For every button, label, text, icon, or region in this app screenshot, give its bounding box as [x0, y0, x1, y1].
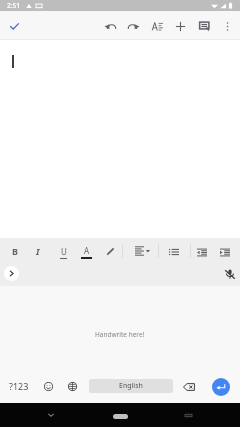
- button[interactable]: Expand toolbar: [4, 266, 19, 281]
- button[interactable]: List: [163, 241, 185, 263]
- button[interactable]: Done: [3, 15, 25, 37]
- button[interactable]: Align: [131, 240, 153, 262]
- button[interactable]: More options: [216, 15, 238, 37]
- button[interactable]: Change language: [63, 377, 81, 395]
- button[interactable]: Comment: [193, 15, 215, 37]
- button[interactable]: Hide keyboard: [42, 406, 60, 424]
- button[interactable]: Italic: [27, 240, 49, 262]
- button[interactable]: Increase indent: [214, 241, 236, 263]
- button[interactable]: Switch keyboard: [179, 406, 197, 424]
- button[interactable]: Enter: [212, 378, 230, 396]
- button[interactable]: Backspace: [180, 378, 198, 396]
- staticText: B: [12, 245, 18, 257]
- button[interactable]: English: [89, 379, 173, 393]
- button[interactable]: Redo: [122, 15, 144, 37]
- button[interactable]: Text formatting: [146, 15, 168, 37]
- button[interactable]: Emoji: [39, 377, 57, 395]
- staticText: 2:51: [7, 1, 20, 10]
- staticText: I: [36, 245, 40, 257]
- staticText: U: [61, 246, 67, 257]
- staticText: English: [119, 381, 143, 391]
- button[interactable]: Undo: [99, 15, 121, 37]
- staticText: A: [84, 245, 90, 256]
- button[interactable]: Decrease indent: [191, 241, 213, 263]
- button[interactable]: ?123: [7, 377, 31, 395]
- button[interactable]: Text color: [75, 241, 97, 263]
- button[interactable]: Home: [113, 414, 128, 419]
- button[interactable]: Microphone off: [221, 265, 239, 283]
- button[interactable]: Underline: [52, 241, 74, 263]
- button[interactable]: Bold: [4, 240, 26, 262]
- staticText: ?123: [9, 380, 29, 392]
- staticText: Handwrite here!: [95, 330, 145, 339]
- button[interactable]: Highlight: [99, 240, 121, 262]
- button[interactable]: Insert: [169, 15, 191, 37]
